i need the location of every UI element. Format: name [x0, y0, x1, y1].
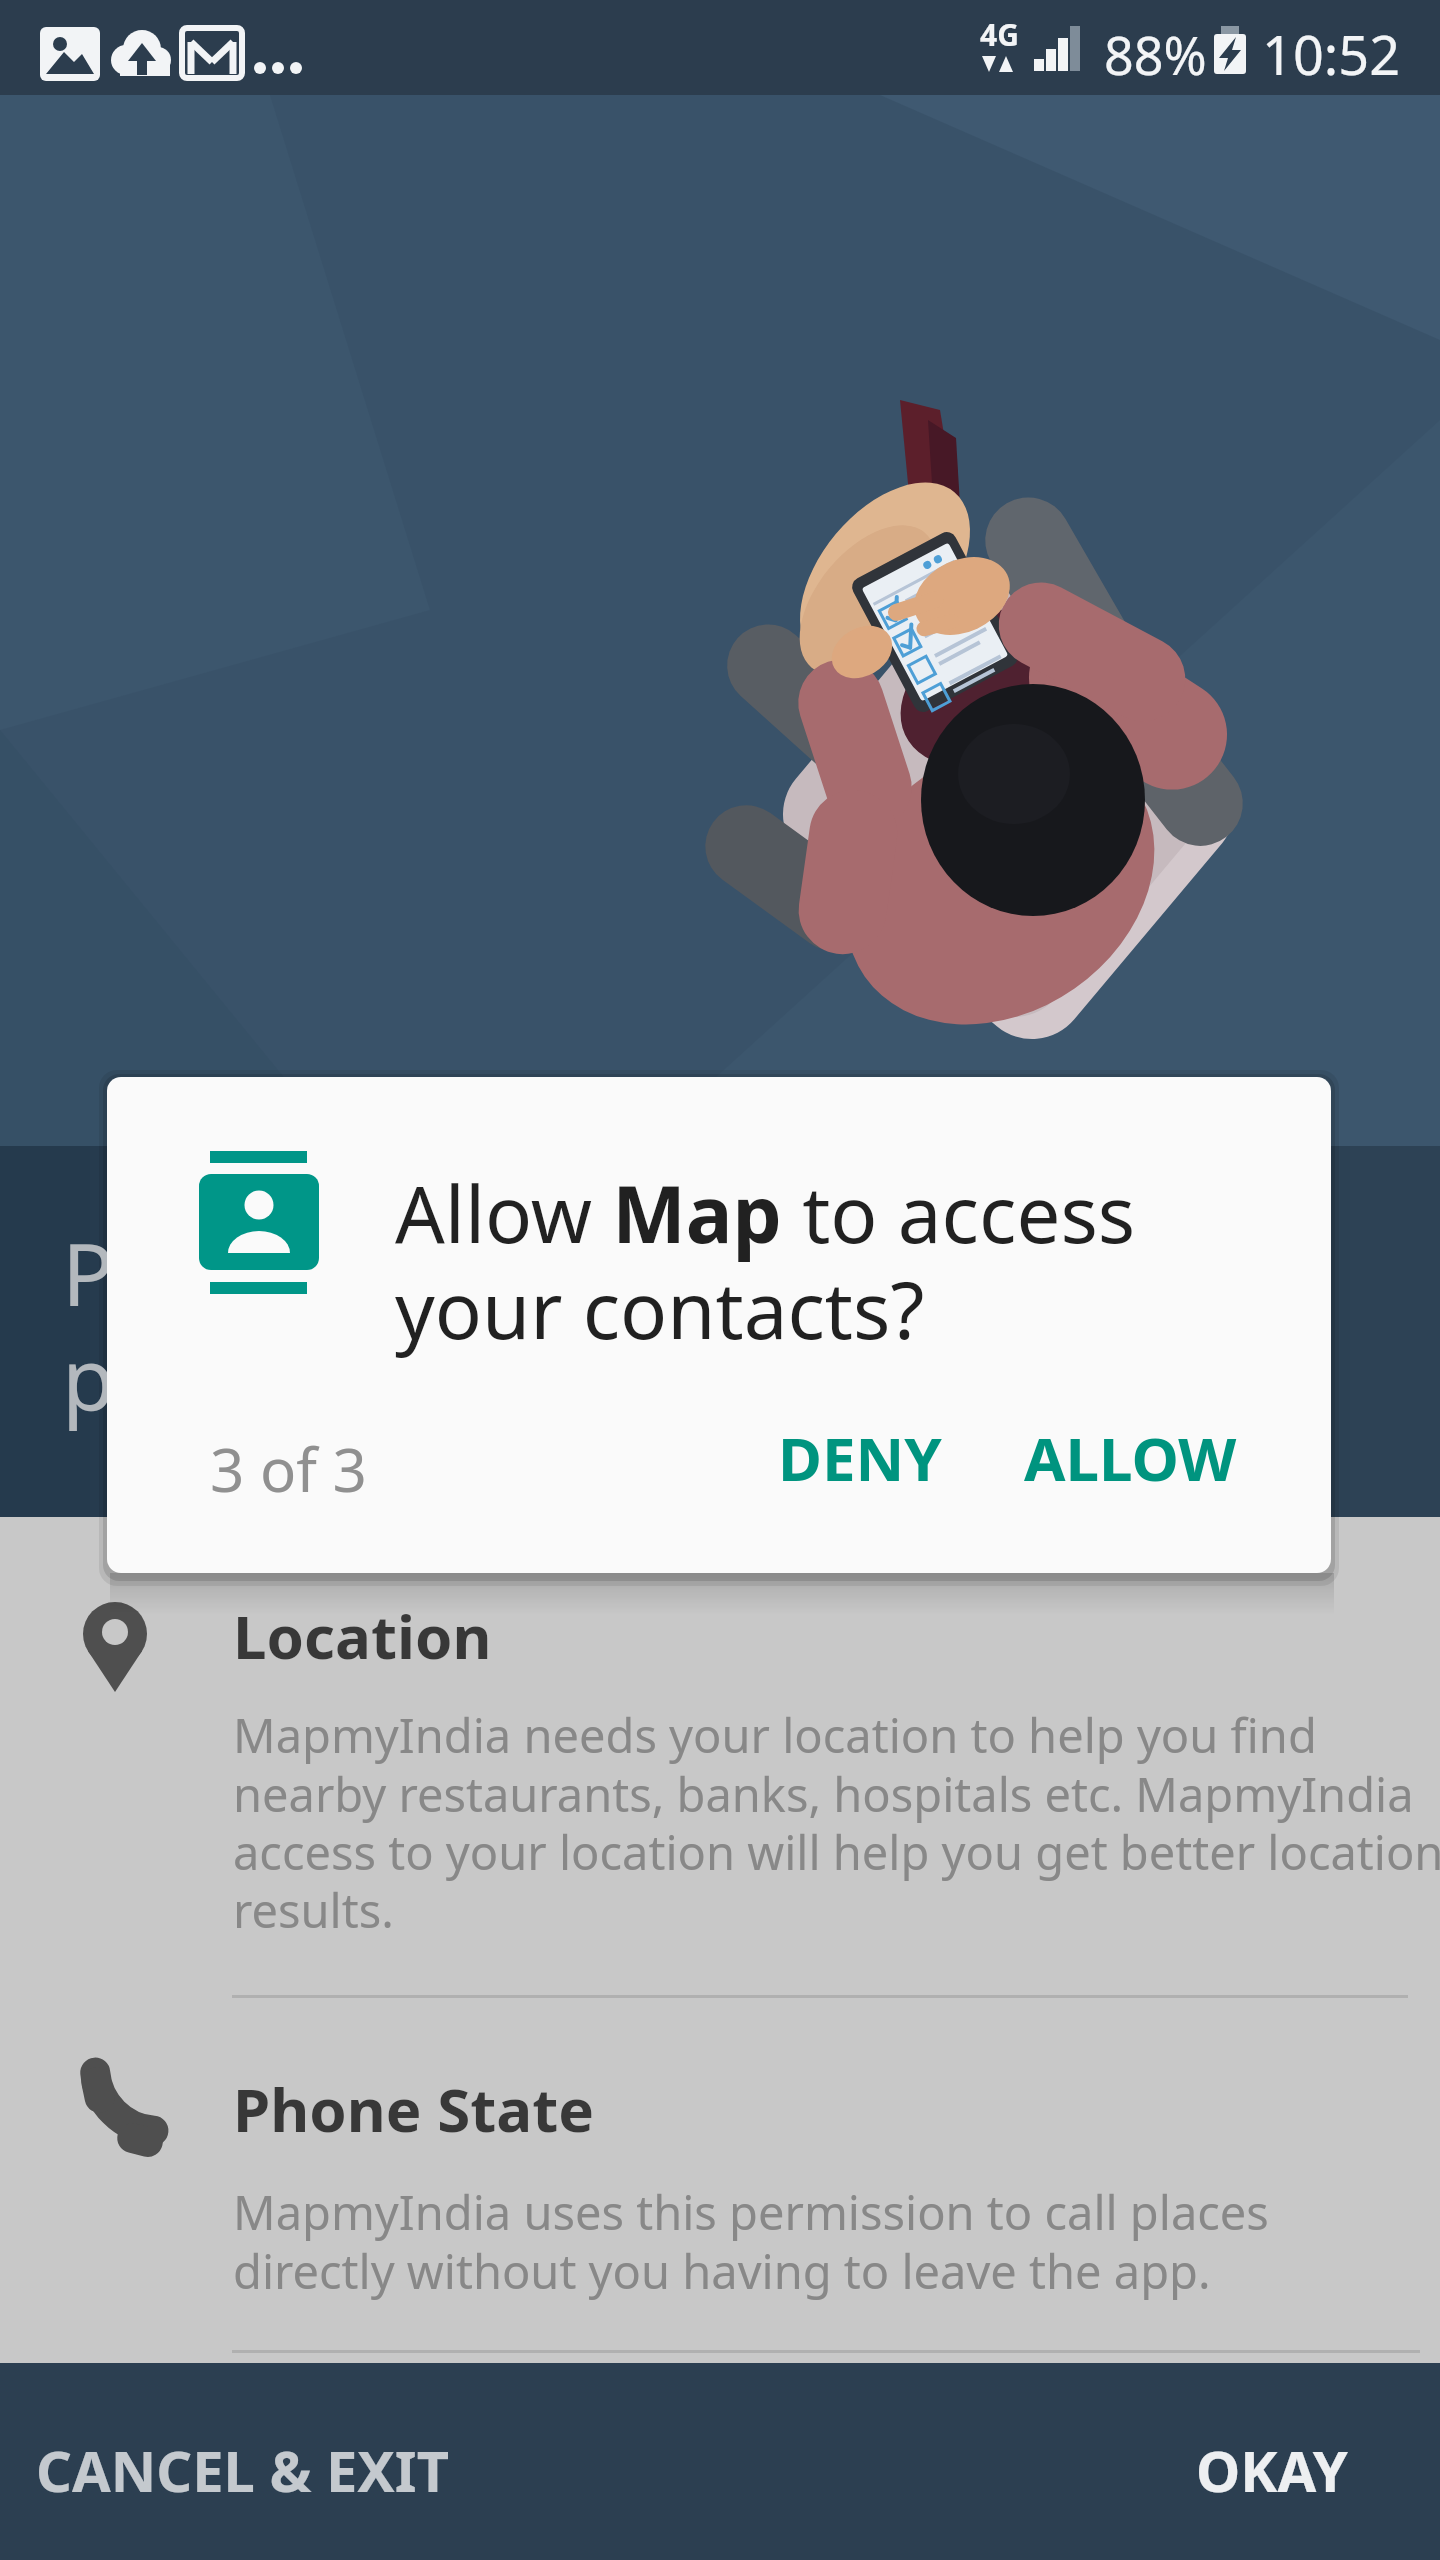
- staticText: MapmyIndia uses this permission to call …: [233, 2180, 1269, 2302]
- staticText: Location: [233, 1595, 492, 1677]
- staticText: OKAY: [1196, 2432, 1348, 2508]
- staticText: ALLOW: [1024, 1417, 1237, 1499]
- button[interactable]: ALLOW: [1010, 1408, 1250, 1508]
- staticText: 4G: [980, 14, 1019, 55]
- button[interactable]: OKAY: [1100, 2400, 1440, 2560]
- staticText: Allow Map to access your contacts?: [395, 1160, 1136, 1362]
- staticText: MapmyIndia needs your location to help y…: [233, 1703, 1440, 1941]
- staticText: 3 of 3: [210, 1428, 367, 1510]
- staticText: P p: [62, 1214, 115, 1435]
- button[interactable]: DENY: [760, 1408, 960, 1508]
- staticText: 10:52: [1262, 17, 1401, 91]
- button[interactable]: CANCEL & EXIT: [0, 2400, 500, 2560]
- staticText: CANCEL & EXIT: [36, 2432, 449, 2508]
- staticText: DENY: [778, 1417, 942, 1499]
- staticText: Phone State: [233, 2068, 595, 2150]
- staticText: 88%: [1104, 19, 1207, 90]
